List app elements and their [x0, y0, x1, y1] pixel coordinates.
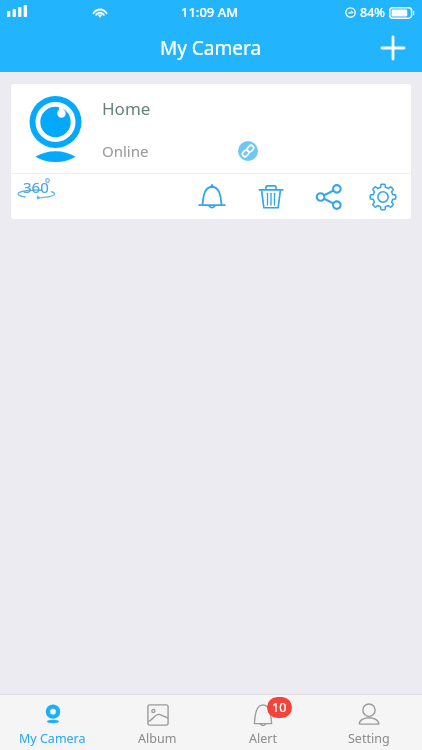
- button[interactable]: Home: [11, 84, 411, 173]
- staticText: Online: [102, 141, 149, 161]
- staticText: Album: [138, 730, 177, 747]
- button[interactable]: Add camera: [371, 24, 415, 72]
- staticText: My Camera: [19, 730, 86, 747]
- button[interactable]: Share link: [238, 141, 258, 161]
- button[interactable]: Share: [310, 174, 348, 219]
- staticText: Setting: [348, 730, 390, 747]
- staticText: 11:09 AM: [181, 3, 239, 21]
- button[interactable]: 10: [210, 695, 316, 750]
- staticText: Home: [102, 97, 151, 120]
- button[interactable]: Alert: [193, 174, 231, 219]
- staticText: Alert: [249, 730, 277, 747]
- button[interactable]: Album: [105, 695, 210, 750]
- button[interactable]: Settings: [364, 174, 402, 219]
- button[interactable]: My Camera: [0, 695, 105, 750]
- button[interactable]: Setting: [316, 695, 422, 750]
- staticText: 10: [272, 699, 287, 716]
- button[interactable]: 360 view: [14, 175, 62, 215]
- button[interactable]: Delete: [252, 174, 290, 219]
- staticText: 84%: [360, 4, 385, 21]
- staticText: 360: [23, 177, 49, 197]
- staticText: My Camera: [160, 35, 262, 61]
